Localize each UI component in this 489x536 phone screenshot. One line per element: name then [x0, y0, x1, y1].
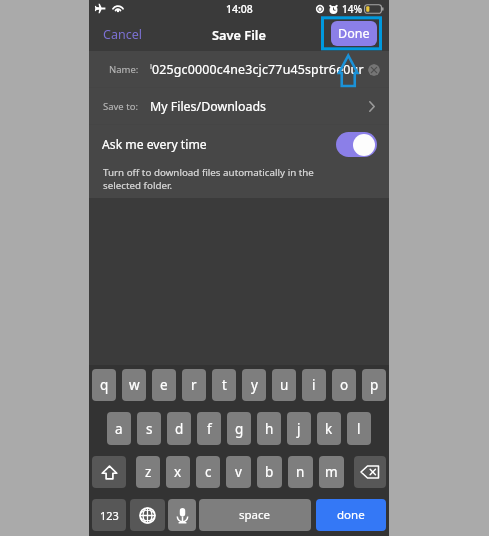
button[interactable]: g	[227, 412, 251, 445]
button[interactable]: k	[317, 412, 341, 445]
button[interactable]: r	[182, 369, 206, 401]
staticText: z	[145, 463, 152, 481]
staticText: s	[146, 420, 153, 438]
staticText: p	[370, 376, 379, 394]
staticText: k	[325, 420, 333, 438]
staticText: d	[175, 420, 184, 438]
button[interactable]: Dictation	[168, 499, 196, 531]
button[interactable]: z	[136, 456, 160, 488]
staticText: o	[340, 376, 349, 394]
button[interactable]: Change keyboard	[130, 499, 165, 531]
staticText: f	[207, 420, 212, 438]
button[interactable]: w	[122, 369, 146, 401]
button[interactable]: 123	[92, 499, 126, 531]
button[interactable]: y	[242, 369, 266, 401]
staticText: t	[222, 376, 227, 394]
staticText: m	[325, 463, 338, 481]
button[interactable]: d	[167, 412, 191, 445]
button[interactable]: n	[288, 456, 313, 488]
staticText: h	[265, 420, 274, 438]
staticText: c	[205, 463, 212, 481]
staticText: Save to:	[103, 100, 138, 113]
staticText: a	[115, 420, 123, 438]
button[interactable]: l	[347, 412, 371, 445]
staticText: 14%	[342, 2, 362, 16]
button[interactable]: f	[197, 412, 221, 445]
button[interactable]: Backspace	[354, 456, 386, 488]
button[interactable]: m	[319, 456, 344, 488]
staticText: w	[129, 376, 140, 394]
staticText: j	[297, 420, 301, 438]
staticText: Cancel	[103, 26, 142, 43]
button[interactable]: o	[332, 369, 356, 401]
staticText: Done	[338, 25, 370, 42]
button[interactable]: Shift	[92, 456, 126, 488]
button[interactable]: i	[302, 369, 326, 401]
staticText: u	[280, 376, 289, 394]
button[interactable]: p	[362, 369, 386, 401]
staticText: space	[239, 507, 271, 523]
staticText: My Files/Downloads	[150, 98, 267, 115]
button[interactable]: space	[199, 499, 311, 531]
button[interactable]: h	[257, 412, 281, 445]
button[interactable]: s	[137, 412, 161, 445]
staticText: r	[191, 376, 197, 394]
button[interactable]: t	[212, 369, 236, 401]
staticText: done	[337, 507, 365, 523]
staticText: n	[296, 463, 305, 481]
button[interactable]: Cancel	[89, 19, 156, 50]
staticText: g	[235, 420, 244, 438]
staticText: Turn off to download files automatically…	[103, 166, 353, 192]
button[interactable]: Done	[331, 21, 377, 46]
button[interactable]: x	[166, 456, 190, 488]
staticText: v	[235, 463, 242, 481]
button[interactable]: j	[287, 412, 311, 445]
staticText: 14:08	[226, 2, 253, 16]
staticText: e	[160, 376, 168, 394]
staticText: Name:	[109, 63, 139, 76]
staticText: b	[265, 463, 274, 481]
staticText: 123	[100, 508, 119, 523]
button[interactable]: c	[196, 456, 220, 488]
staticText: x	[174, 463, 182, 481]
staticText: Ask me every time	[102, 136, 207, 153]
button[interactable]: Ask me every time	[89, 125, 389, 163]
button[interactable]: v	[226, 456, 251, 488]
staticText: 025gc0000c4ne3cjc77u45sptr6e0ur	[152, 61, 364, 78]
button[interactable]: Save to:	[89, 88, 389, 125]
staticText: q	[100, 376, 109, 394]
button[interactable]: b	[257, 456, 282, 488]
button[interactable]: a	[107, 412, 131, 445]
button[interactable]: e	[152, 369, 176, 401]
staticText: l	[357, 420, 361, 438]
button[interactable]: q	[92, 369, 116, 401]
staticText: y	[251, 376, 258, 394]
staticText: Save File	[212, 26, 266, 43]
button[interactable]: done	[316, 499, 386, 531]
button[interactable]: Clear text	[368, 64, 380, 76]
button[interactable]: u	[272, 369, 296, 401]
staticText: i	[312, 376, 316, 394]
